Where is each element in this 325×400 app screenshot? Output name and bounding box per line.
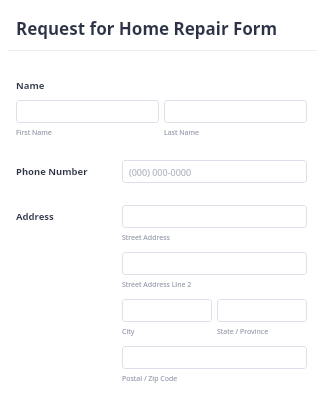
staticText: State / Province bbox=[217, 327, 269, 337]
button[interactable] bbox=[217, 299, 307, 322]
staticText: Street Address Line 2 bbox=[122, 280, 192, 290]
staticText: City bbox=[122, 327, 135, 337]
button[interactable] bbox=[122, 346, 307, 369]
staticText: Last Name bbox=[164, 128, 200, 138]
button[interactable] bbox=[164, 100, 307, 123]
staticText: Street Address bbox=[122, 233, 170, 243]
staticText: Name bbox=[16, 79, 45, 92]
staticText: Postal / Zip Code bbox=[122, 374, 178, 384]
staticText: (000) 000-0000 bbox=[129, 166, 192, 178]
staticText: Phone Number bbox=[16, 165, 88, 178]
staticText: Request for Home Repair Form bbox=[16, 17, 278, 40]
button[interactable] bbox=[122, 205, 307, 228]
button[interactable] bbox=[122, 252, 307, 275]
staticText: First Name bbox=[16, 128, 52, 138]
button[interactable] bbox=[122, 299, 212, 322]
button[interactable] bbox=[16, 100, 159, 123]
button[interactable]: (000) 000-0000 bbox=[122, 160, 307, 183]
staticText: Address bbox=[16, 210, 54, 223]
